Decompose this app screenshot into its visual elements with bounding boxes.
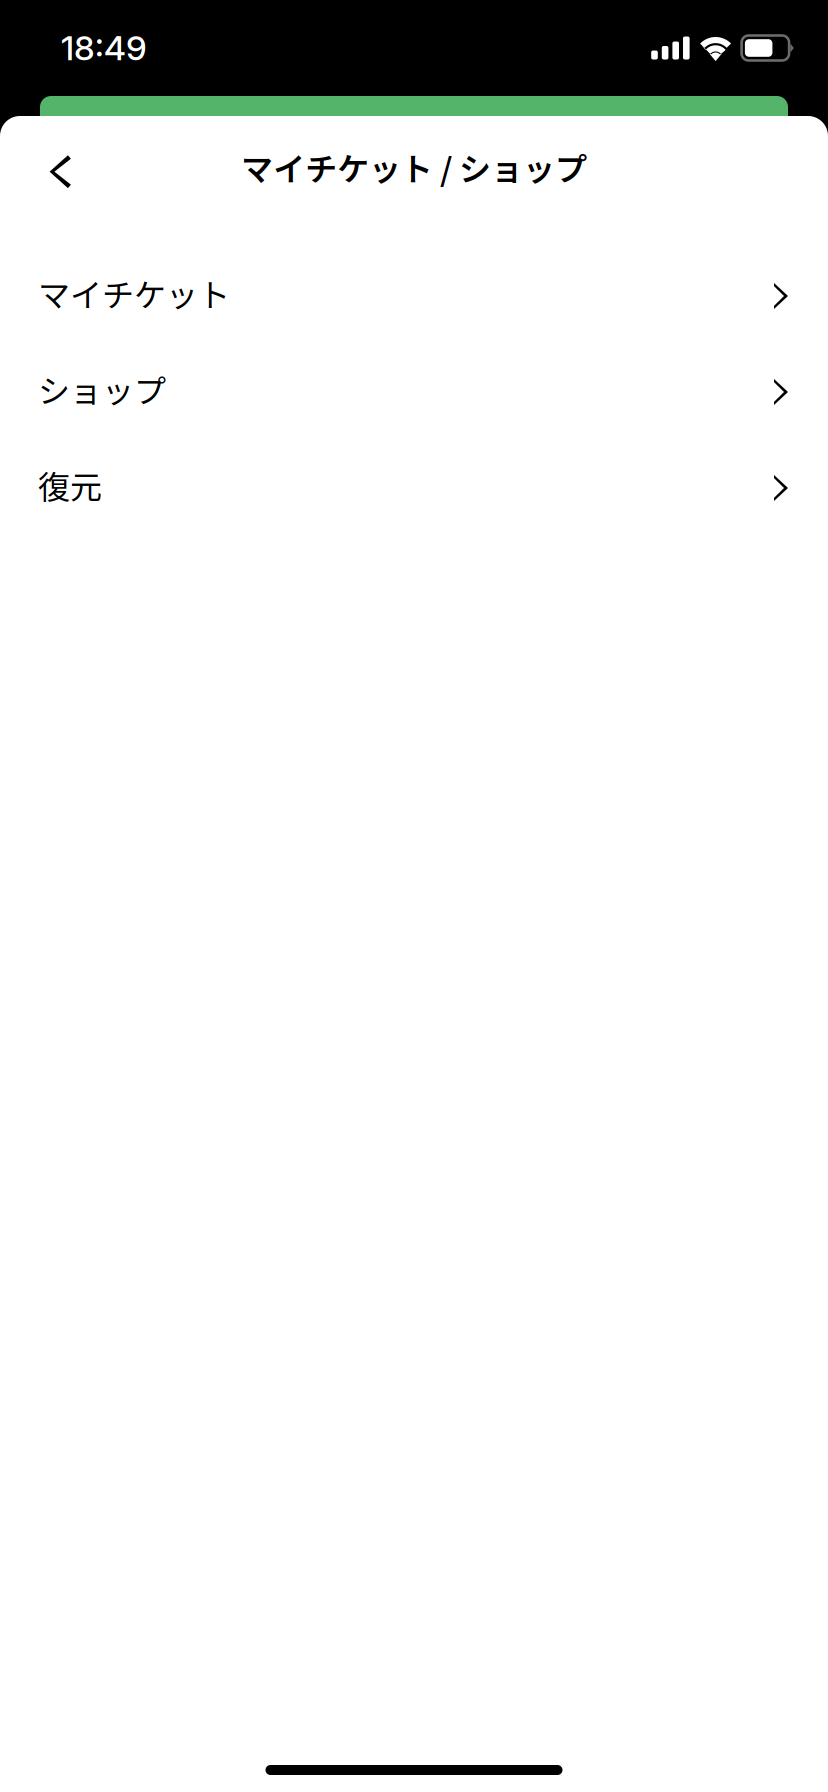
staticText: マイチケット / ショップ [241,144,587,190]
button[interactable]: 戻る [0,116,101,227]
button[interactable]: マイチケット [0,248,828,344]
staticText: 18:49 [61,27,147,68]
staticText: ショップ [38,366,166,412]
staticText: マイチケット [38,270,230,316]
button[interactable]: ショップ [0,344,828,440]
button[interactable]: 復元 [0,440,828,536]
staticText: 復元 [38,462,102,508]
